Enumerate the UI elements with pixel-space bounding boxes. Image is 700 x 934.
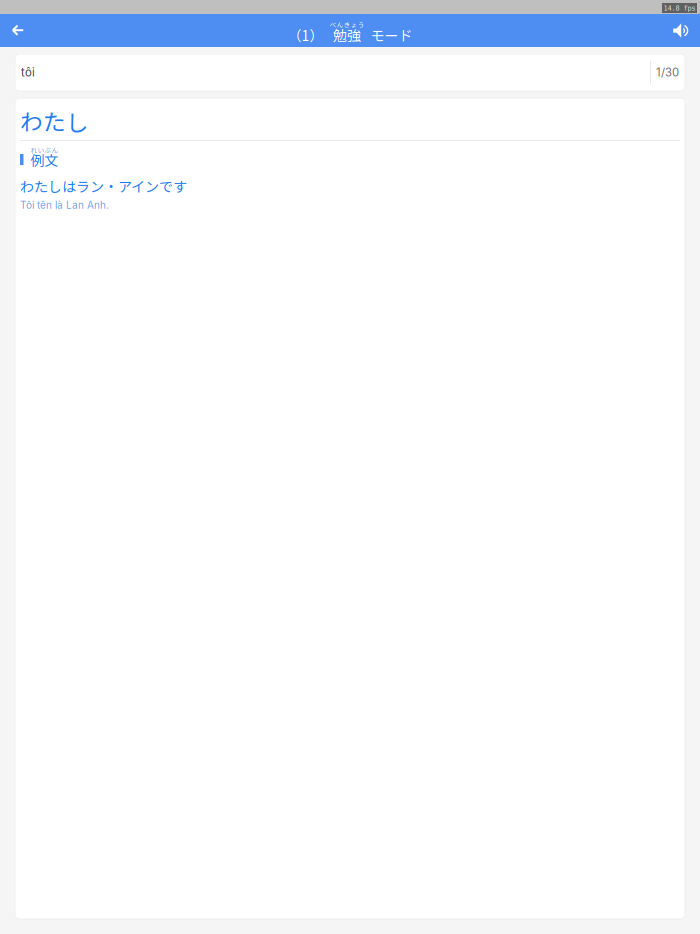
staticText: 例文 [30,150,58,170]
staticText: 1/30 [656,66,679,79]
staticText: モード [370,25,412,45]
staticText: べんきょう [329,20,364,29]
button[interactable]: Back [0,14,34,47]
staticText: わたし [20,104,89,137]
staticText: 14.8 fps [663,4,695,12]
staticText: Tôi tên là Lan Anh. [20,199,109,211]
staticText: わたしはラン・アインです [20,176,187,196]
staticText: tôi [21,66,35,79]
staticText: （1） [287,25,323,45]
staticText: 勉強 [333,25,361,45]
button[interactable]: Play sound [664,14,700,47]
staticText: れいぶん [30,145,58,155]
